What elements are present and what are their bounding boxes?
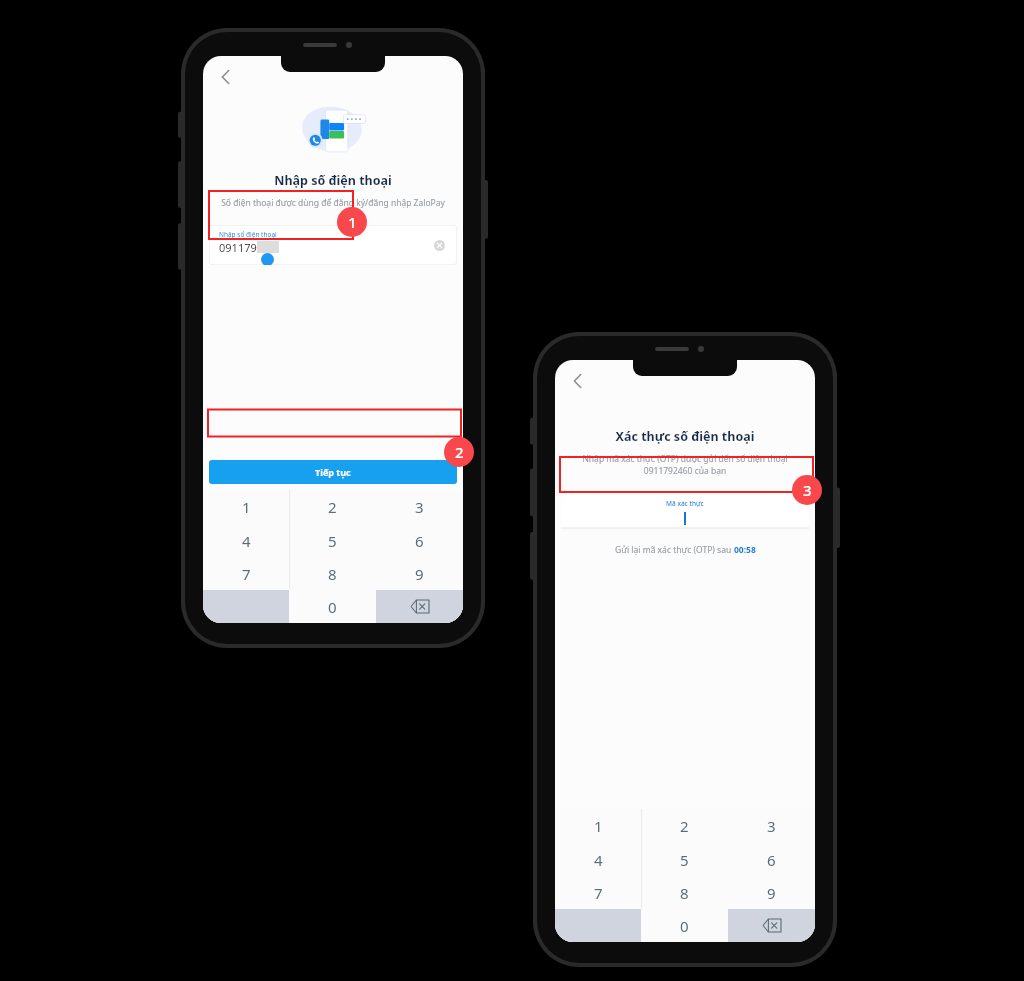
staticText: Gửi lại mã xác thực (OTP) sau	[615, 544, 734, 556]
staticText: 8	[680, 883, 689, 903]
staticText: 0	[680, 916, 689, 936]
staticText: Xác thực số điện thoại	[555, 428, 815, 445]
button[interactable]: Back	[563, 366, 593, 396]
staticText: 7	[594, 883, 603, 903]
staticText: 5	[328, 531, 337, 551]
staticText: 6	[767, 850, 776, 870]
button[interactable]: 5	[641, 843, 728, 876]
staticText: Nhập mã xác thực (OTP) được gửi đến số đ…	[561, 453, 809, 477]
button[interactable]: 8	[641, 876, 728, 909]
button[interactable]: 3	[376, 490, 463, 524]
button[interactable]: 6	[376, 524, 463, 557]
button[interactable]: 7	[203, 557, 289, 590]
staticText: 9	[415, 564, 424, 584]
staticText: 2	[328, 497, 337, 517]
button[interactable]: Clear	[431, 237, 447, 253]
button[interactable]: Back	[211, 62, 241, 92]
button[interactable]: 5	[289, 524, 376, 557]
staticText: 0	[328, 597, 337, 617]
staticText: 8	[328, 564, 337, 584]
button[interactable]: Backspace	[376, 590, 463, 623]
button[interactable]: 9	[376, 557, 463, 590]
button[interactable]	[203, 590, 289, 623]
staticText: 3	[767, 816, 776, 836]
staticText: 9	[767, 883, 776, 903]
staticText: 4	[242, 531, 251, 551]
staticText: Nhập số điện thoại	[203, 172, 463, 189]
button[interactable]: Nhập số điện thoại	[209, 225, 457, 265]
button[interactable]: 6	[728, 843, 815, 876]
button[interactable]: Tiếp tục	[209, 460, 457, 484]
staticText: Nhập số điện thoại	[219, 230, 277, 239]
staticText: 091179	[219, 240, 257, 255]
staticText: 1	[348, 212, 357, 232]
staticText: 6	[415, 531, 424, 551]
button[interactable]: Mã xác thực	[561, 493, 809, 528]
staticText: 3	[803, 480, 812, 500]
button[interactable]: 4	[203, 524, 289, 557]
staticText: Mã xác thực	[666, 499, 704, 508]
button[interactable]: 1	[203, 490, 289, 524]
staticText: 4	[594, 850, 603, 870]
button[interactable]: 3	[728, 809, 815, 843]
button[interactable]: Backspace	[728, 909, 815, 942]
button[interactable]: 7	[555, 876, 641, 909]
staticText: 1	[594, 816, 603, 836]
button[interactable]: 8	[289, 557, 376, 590]
button[interactable]: 2	[641, 809, 728, 843]
staticText: Số điện thoại được dùng để đăng ký/đăng …	[211, 197, 455, 209]
staticText: 2	[455, 442, 464, 462]
button[interactable]: 1	[555, 809, 641, 843]
staticText: 5	[680, 850, 689, 870]
staticText: 7	[242, 564, 251, 584]
staticText: 1	[242, 497, 251, 517]
button[interactable]: 2	[289, 490, 376, 524]
staticText: 00:58	[734, 544, 756, 556]
button[interactable]: 0	[641, 909, 728, 942]
button[interactable]: 9	[728, 876, 815, 909]
button[interactable]: 4	[555, 843, 641, 876]
button[interactable]	[555, 909, 641, 942]
staticText: 2	[680, 816, 689, 836]
staticText: 3	[415, 497, 424, 517]
button[interactable]: 0	[289, 590, 376, 623]
staticText: Tiếp tục	[315, 466, 351, 478]
